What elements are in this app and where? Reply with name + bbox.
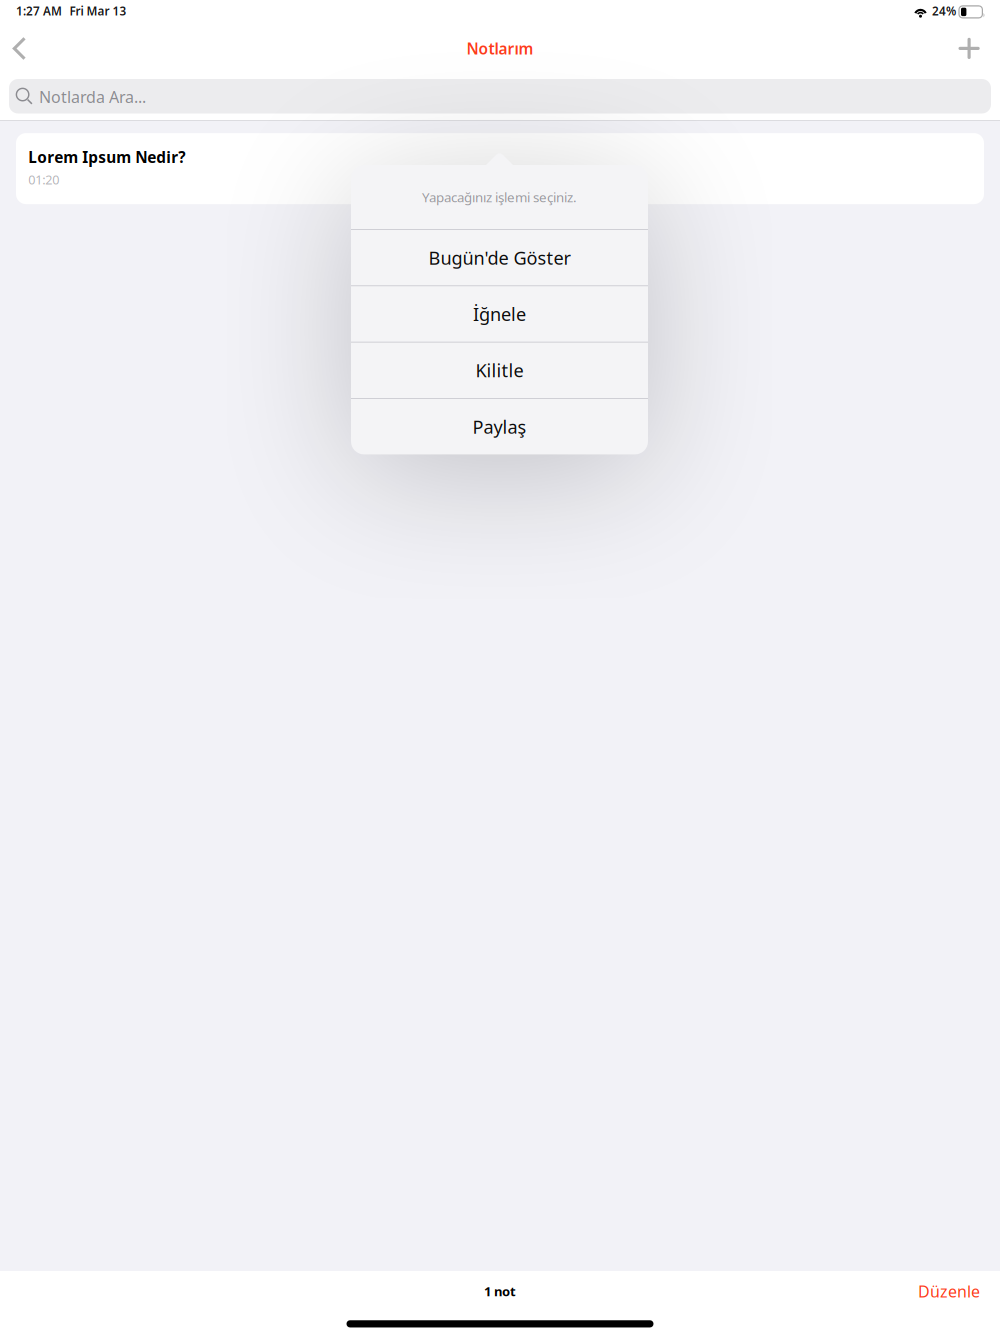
staticText: 1 not [484, 1282, 516, 1300]
staticText: Lorem Ipsum Nedir? [28, 147, 185, 167]
staticText: 1:27 AM [16, 3, 62, 19]
button[interactable]: Bugün'de Göster [351, 229, 648, 285]
button[interactable]: New Note [944, 22, 1000, 70]
staticText: Kilitle [475, 358, 523, 383]
staticText: 01:20 [28, 171, 59, 188]
staticText: 24% [932, 3, 956, 19]
button[interactable]: Kilitle [351, 342, 648, 398]
staticText: İğnele [473, 302, 526, 326]
staticText: Fri Mar 13 [69, 3, 126, 19]
staticText: Düzenle [918, 1280, 980, 1302]
staticText: Notlarım [466, 38, 533, 59]
button[interactable]: Lorem Ipsum Nedir? [16, 133, 984, 204]
staticText: Notlarda Ara... [39, 86, 146, 108]
button[interactable]: Düzenle [898, 1270, 1000, 1312]
button[interactable]: Paylaş [351, 398, 648, 454]
button[interactable]: Back [0, 22, 40, 70]
staticText: Bugün'de Göster [428, 245, 570, 270]
staticText: Yapacağınız işlemi seçiniz. [422, 188, 577, 206]
staticText: Paylaş [472, 414, 526, 439]
button[interactable]: İğnele [351, 285, 648, 342]
